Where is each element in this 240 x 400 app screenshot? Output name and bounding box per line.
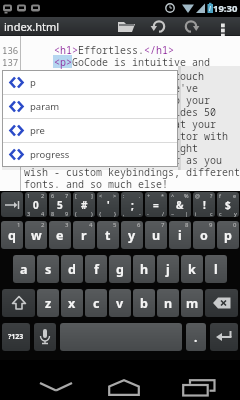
button[interactable]: f: [217, 192, 239, 217]
button[interactable]: p: [217, 221, 239, 249]
button[interactable]: [205, 289, 238, 317]
button[interactable]: m: [181, 289, 203, 317]
staticText: 5: [113, 221, 117, 229]
button[interactable]: @: [193, 192, 215, 217]
button[interactable]: g: [109, 255, 131, 283]
staticText: 0: [233, 221, 237, 229]
staticText: 9: [209, 221, 213, 229]
staticText: progress: [30, 148, 70, 161]
button[interactable]: [116, 17, 138, 36]
button[interactable]: [: [73, 192, 95, 217]
staticText: x: [68, 295, 76, 312]
button[interactable]: [94, 360, 154, 400]
staticText: 2: [41, 192, 45, 199]
staticText: 6: [51, 192, 55, 199]
button[interactable]: s: [37, 255, 59, 283]
staticText: param: [30, 100, 60, 113]
button[interactable]: x: [61, 289, 83, 317]
staticText: z: [45, 295, 52, 312]
button[interactable]: [214, 17, 232, 36]
button[interactable]: o: [193, 221, 215, 249]
button[interactable]: 6: [49, 192, 71, 217]
staticText: index.html: [4, 19, 60, 34]
button[interactable]: t: [97, 221, 119, 249]
staticText: <h1>Effortless.</h1>: [24, 43, 174, 57]
staticText: a: [20, 261, 28, 278]
staticText: 4: [89, 221, 93, 229]
button[interactable]: [26, 360, 86, 400]
button[interactable]: r: [73, 221, 95, 249]
staticText: p: [30, 76, 36, 89]
staticText: j: [166, 261, 170, 278]
staticText: ~: [171, 210, 175, 217]
button[interactable]: [210, 323, 238, 351]
button[interactable]: e: [49, 221, 71, 249]
staticText: ^: [171, 192, 175, 199]
staticText: e: [233, 192, 237, 199]
button[interactable]: q: [1, 221, 23, 249]
button[interactable]: progress: [3, 143, 177, 166]
staticText: 8: [51, 210, 55, 217]
staticText: 7: [65, 192, 69, 199]
button[interactable]: l: [205, 255, 227, 283]
staticText: 137: [2, 56, 19, 68]
staticText: ]: [91, 192, 93, 199]
button[interactable]: j: [157, 255, 179, 283]
staticText: i: [178, 227, 182, 244]
button[interactable]: f: [85, 255, 107, 283]
staticText: {: [99, 210, 102, 217]
button[interactable]: +: [145, 192, 167, 217]
button[interactable]: w: [25, 221, 47, 249]
staticText: %: [184, 192, 189, 199]
button[interactable]: z: [37, 289, 59, 317]
button[interactable]: d: [61, 255, 83, 283]
staticText: pre: [30, 124, 45, 137]
button[interactable]: [60, 323, 182, 351]
staticText: ;: [131, 198, 134, 212]
button[interactable]: [181, 17, 201, 36]
button[interactable]: [2, 289, 35, 317]
button[interactable]: c: [85, 289, 107, 317]
button[interactable]: n: [157, 289, 179, 317]
button[interactable]: u: [145, 221, 167, 249]
button[interactable]: 1: [25, 192, 47, 217]
button[interactable]: ?123: [2, 323, 30, 351]
staticText: <: [99, 192, 103, 199]
staticText: ?: [210, 192, 213, 199]
staticText: 0: [33, 198, 39, 212]
button[interactable]: a: [13, 255, 35, 283]
staticText: w: [31, 227, 42, 244]
staticText: -: [147, 210, 149, 217]
button[interactable]: pre: [3, 119, 177, 142]
button[interactable]: h: [133, 255, 155, 283]
button[interactable]: :: [121, 192, 143, 217]
staticText: i: [195, 210, 197, 217]
button[interactable]: [149, 17, 169, 36]
button[interactable]: [1, 192, 23, 217]
staticText: c: [93, 295, 100, 312]
staticText: #: [81, 198, 88, 212]
button[interactable]: i: [169, 221, 191, 249]
button[interactable]: param: [3, 95, 177, 118]
button[interactable]: k: [181, 255, 203, 283]
staticText: t: [105, 227, 111, 244]
button[interactable]: .: [186, 323, 206, 351]
staticText: o: [200, 227, 208, 244]
staticText: :: [123, 192, 125, 199]
button[interactable]: ^: [169, 192, 191, 217]
staticText: p: [224, 227, 232, 244]
staticText: fonts. and so much else!: [24, 177, 168, 191]
button[interactable]: p: [3, 71, 177, 94]
button[interactable]: b: [133, 289, 155, 317]
staticText: c: [210, 210, 213, 217]
button[interactable]: v: [109, 289, 131, 317]
staticText: }: [114, 210, 117, 217]
button[interactable]: y: [121, 221, 143, 249]
button[interactable]: <: [97, 192, 119, 217]
button[interactable]: [168, 360, 230, 400]
staticText: 136: [2, 44, 19, 56]
staticText: [: [75, 192, 77, 199]
staticText: +: [147, 192, 151, 199]
staticText: .: [139, 192, 141, 199]
button[interactable]: [34, 323, 56, 351]
